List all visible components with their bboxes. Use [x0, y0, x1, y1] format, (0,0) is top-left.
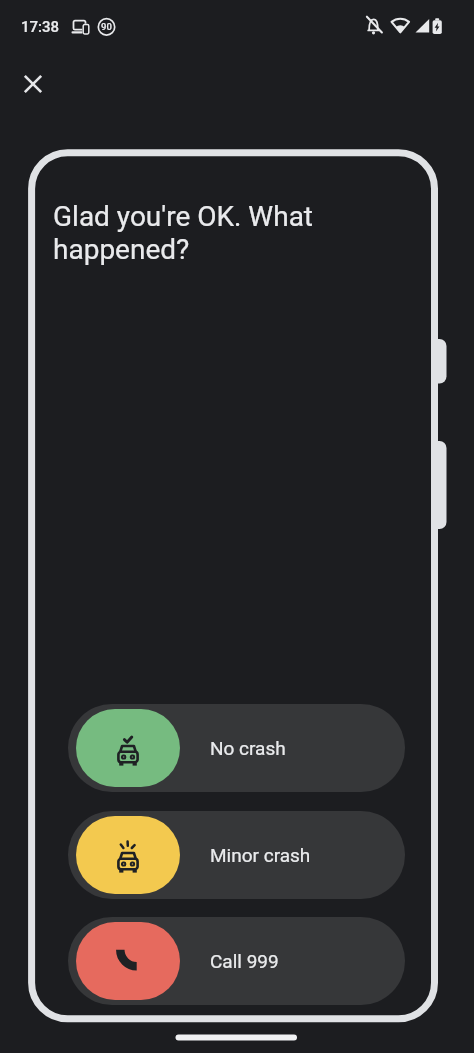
button[interactable]: Minor crash	[68, 811, 405, 899]
staticText: Call 999	[210, 950, 279, 972]
staticText: Minor crash	[210, 844, 311, 866]
button[interactable]	[13, 64, 53, 104]
staticText: 17:38	[21, 18, 60, 36]
button[interactable]: Call 999	[68, 917, 405, 1005]
button[interactable]: No crash	[68, 704, 405, 792]
staticText: Glad you're OK. What happened?	[53, 200, 314, 266]
staticText: 90	[101, 21, 112, 32]
staticText: No crash	[210, 737, 286, 759]
